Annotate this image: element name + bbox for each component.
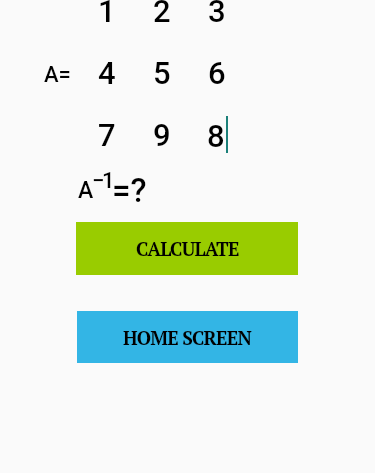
- staticText: 1: [102, 168, 115, 194]
- staticText: 5: [153, 55, 171, 91]
- button[interactable]: 8: [187, 109, 247, 161]
- button[interactable]: 1: [77, 0, 137, 37]
- staticText: 7: [98, 117, 116, 153]
- button[interactable]: 6: [187, 47, 247, 99]
- button[interactable]: 7: [77, 109, 137, 161]
- staticText: 6: [208, 55, 226, 91]
- button[interactable]: 2: [132, 0, 192, 37]
- staticText: 4: [98, 55, 116, 91]
- staticText: =?: [112, 171, 147, 210]
- staticText: 2: [153, 0, 171, 29]
- button[interactable]: CALCULATE: [76, 222, 298, 275]
- button[interactable]: HOME SCREEN: [77, 311, 298, 363]
- staticText: A=: [44, 62, 71, 88]
- staticText: CALCULATE: [136, 236, 239, 261]
- button[interactable]: 5: [132, 47, 192, 99]
- staticText: 8: [207, 118, 225, 154]
- staticText: −: [92, 168, 105, 194]
- staticText: 9: [153, 117, 171, 153]
- staticText: A: [78, 177, 94, 204]
- button[interactable]: 9: [132, 109, 192, 161]
- button[interactable]: 4: [77, 47, 137, 99]
- staticText: HOME SCREEN: [123, 325, 252, 350]
- staticText: 1: [98, 0, 116, 29]
- staticText: 3: [208, 0, 226, 29]
- button[interactable]: 3: [187, 0, 247, 37]
